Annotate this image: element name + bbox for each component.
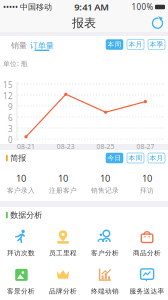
staticText: 拜访	[140, 186, 154, 195]
staticText: 08-23	[57, 142, 75, 151]
staticText: 单位: 瓶	[3, 59, 28, 68]
button[interactable]: 客景分析	[0, 261, 42, 299]
staticText: 本季	[149, 40, 163, 49]
staticText: 3	[8, 123, 13, 134]
button[interactable]: 订单量	[30, 37, 54, 54]
button[interactable]: 本月	[148, 153, 165, 163]
button[interactable]: 终端动销	[84, 261, 126, 299]
button[interactable]: 客户分析	[84, 223, 126, 261]
staticText: 终端动销	[91, 287, 119, 295]
staticText: 注册客户	[49, 186, 77, 195]
staticText: 品牌分析	[49, 287, 77, 295]
staticText: 08-25	[97, 142, 115, 151]
staticText: 本月	[149, 154, 163, 162]
staticText: 报表	[72, 16, 96, 30]
staticText: 0	[8, 134, 13, 145]
staticText: 本周	[107, 40, 121, 49]
button[interactable]: 拜访次数	[0, 223, 42, 261]
staticText: 本周	[128, 154, 142, 162]
staticText: 客户录入	[7, 186, 35, 195]
staticText: 10	[100, 172, 110, 184]
staticText: 10	[142, 172, 152, 184]
button[interactable]: 商品分析	[126, 223, 168, 261]
staticText: 今日	[107, 154, 121, 162]
button[interactable]: 今日	[106, 153, 123, 163]
staticText: 100%	[131, 2, 153, 12]
staticText: 简报	[10, 153, 26, 163]
staticText: 销量	[11, 41, 27, 50]
staticText: 拜访次数	[7, 249, 35, 257]
staticText: 销售记录	[91, 186, 119, 195]
staticText: 客户分析	[91, 249, 119, 257]
staticText: 商品分析	[133, 249, 161, 257]
staticText: 9:41 AM	[74, 1, 109, 13]
button[interactable]: 本季	[148, 39, 165, 49]
staticText: 10	[16, 172, 26, 184]
button[interactable]: 本周	[127, 153, 144, 163]
button[interactable]: 员工里程	[42, 223, 84, 261]
button[interactable]: 本月	[127, 39, 144, 49]
staticText: 12	[3, 90, 13, 101]
staticText: 本月	[128, 40, 142, 49]
staticText: 9	[8, 101, 13, 112]
staticText: •••••	[3, 2, 18, 12]
staticText: 10	[58, 172, 68, 184]
button[interactable]: 服务送达率	[126, 261, 168, 299]
staticText: 员工里程	[49, 249, 77, 257]
button[interactable]: 本周	[106, 39, 123, 49]
staticText: 服务送达率	[129, 287, 164, 295]
staticText: 中国移动	[18, 2, 52, 12]
staticText: 08-21	[17, 142, 35, 151]
staticText: 08-27	[136, 142, 154, 151]
staticText: 数据分析	[10, 210, 42, 220]
button[interactable]: 销量	[8, 37, 30, 54]
staticText: 客景分析	[7, 287, 35, 295]
button[interactable]: 品牌分析	[42, 261, 84, 299]
staticText: 订单量	[30, 41, 54, 50]
staticText: 6	[8, 112, 13, 123]
button[interactable]: 刷新	[147, 14, 168, 32]
staticText: 15	[3, 79, 13, 90]
